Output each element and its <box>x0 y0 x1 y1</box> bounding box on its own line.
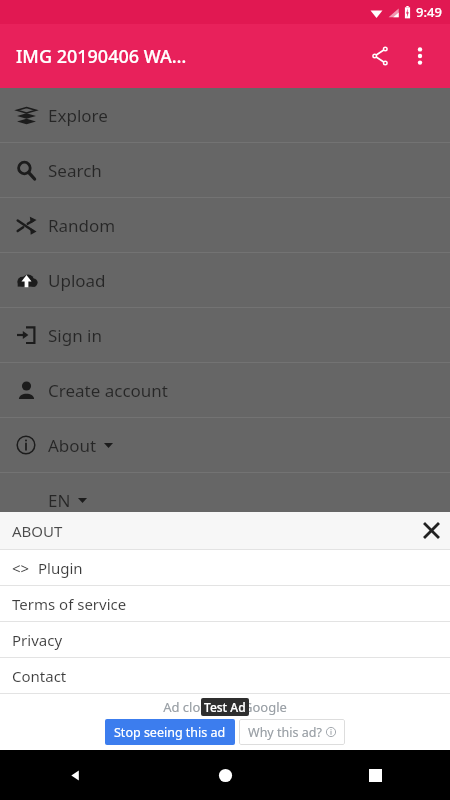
button[interactable]: Close <box>413 512 450 549</box>
button[interactable]: Share <box>360 36 400 76</box>
staticText: Terms of service <box>12 594 127 614</box>
button[interactable]: Back <box>0 750 150 800</box>
button[interactable]: Sign in <box>0 308 450 363</box>
staticText: Why this ad? <box>248 724 322 741</box>
button[interactable]: Privacy <box>0 622 450 658</box>
staticText: Create account <box>48 379 168 402</box>
staticText: Explore <box>48 104 108 127</box>
button[interactable]: ABOUT <box>0 512 450 549</box>
staticText: Plugin <box>38 558 83 578</box>
staticText: Test Ad <box>204 699 246 715</box>
button[interactable]: Recent apps <box>300 750 450 800</box>
button[interactable]: About <box>0 418 450 473</box>
button[interactable]: Contact <box>0 658 450 694</box>
staticText: Search <box>48 159 102 182</box>
button[interactable]: Random <box>0 198 450 253</box>
button[interactable]: Upload <box>0 253 450 308</box>
staticText: <> <box>12 558 30 578</box>
button[interactable]: <> <box>0 550 450 586</box>
staticText: IMG 20190406 WA0002 - Dizin… <box>16 44 188 69</box>
staticText: Sign in <box>48 324 102 347</box>
staticText: EN <box>48 489 71 512</box>
staticText: Stop seeing this ad <box>114 724 226 741</box>
staticText: ABOUT <box>12 521 63 541</box>
staticText: Upload <box>48 269 106 292</box>
staticText: Privacy <box>12 630 63 650</box>
staticText: 9:49 <box>416 3 442 21</box>
staticText: Contact <box>12 666 67 686</box>
button[interactable]: Explore <box>0 88 450 143</box>
button[interactable]: Why this ad? <box>239 719 345 745</box>
staticText: Random <box>48 214 116 237</box>
staticText: About <box>48 434 97 457</box>
button[interactable]: Search <box>0 143 450 198</box>
button[interactable]: Home <box>150 750 300 800</box>
button[interactable]: Stop seeing this ad <box>105 719 235 745</box>
staticText: Ad closed by Google <box>163 698 287 716</box>
button[interactable]: Terms of service <box>0 586 450 622</box>
button[interactable]: EN <box>0 473 450 528</box>
button[interactable]: More options <box>400 36 440 76</box>
button[interactable]: Create account <box>0 363 450 418</box>
